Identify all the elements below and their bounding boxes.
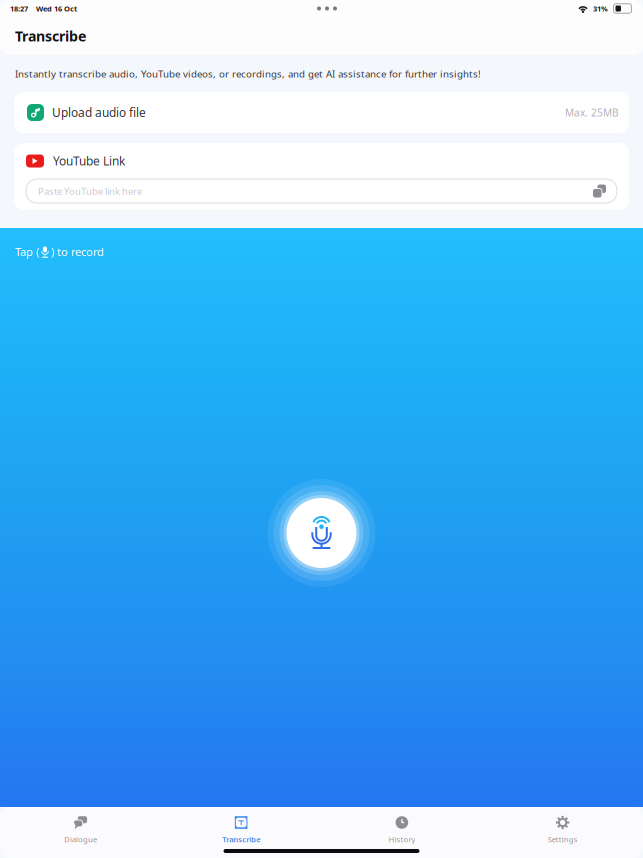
staticText: Upload audio file <box>52 104 146 121</box>
staticText: Wed 16 Oct <box>36 3 77 14</box>
button[interactable]: Transcribe <box>161 807 322 847</box>
staticText: History <box>388 834 415 844</box>
button[interactable]: Paste YouTube link here <box>26 179 617 203</box>
button[interactable]: Upload audio file <box>14 92 629 133</box>
staticText: Transcribe <box>15 26 86 46</box>
staticText: Max. 25MB <box>565 106 619 119</box>
staticText: Instantly transcribe audio, YouTube vide… <box>15 67 481 80</box>
staticText: Settings <box>548 834 578 844</box>
staticText: Dialogue <box>64 834 97 844</box>
staticText: 31% <box>593 3 608 14</box>
staticText: 18:27 <box>10 3 28 14</box>
button[interactable]: Record <box>286 498 356 568</box>
staticText: Transcribe <box>222 834 260 844</box>
button[interactable]: History <box>321 807 482 847</box>
button[interactable]: Settings <box>482 807 643 847</box>
staticText: Tap ( <box>15 244 39 259</box>
staticText: Paste YouTube link here <box>38 185 142 197</box>
button[interactable]: Transcribe <box>0 17 643 55</box>
button[interactable]: Dialogue <box>0 807 161 847</box>
staticText: ) to record <box>51 244 104 259</box>
staticText: YouTube Link <box>53 153 125 169</box>
